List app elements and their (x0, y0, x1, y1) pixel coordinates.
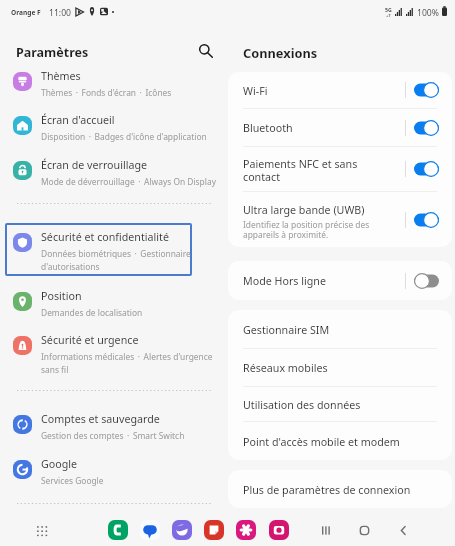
staticText: Position (41, 289, 82, 304)
staticText: 11:00 (49, 7, 71, 19)
button[interactable]: Sécurité et confidentialité (0, 221, 228, 282)
staticText: Mode de déverrouillage · Always On Displ… (41, 176, 216, 187)
staticText: Paramètres (16, 44, 89, 61)
button[interactable]: Réseaux mobiles (228, 349, 452, 386)
button[interactable]: Activé (414, 161, 439, 177)
staticText: Connexions (243, 44, 318, 61)
staticText: Demandes de localisation (41, 307, 143, 318)
button[interactable]: Messages (140, 520, 160, 540)
staticText: Gestionnaire SIM (243, 323, 330, 338)
staticText: Données biométriques · Gestionnaire d'au… (41, 248, 218, 273)
button[interactable]: Mode Hors ligne (228, 261, 452, 300)
button[interactable]: Écran de verrouillage (0, 149, 228, 196)
staticText: Services Google (41, 475, 104, 486)
staticText: Google (41, 457, 78, 472)
button[interactable]: Position (0, 280, 228, 327)
button[interactable]: Utilisation des données (228, 387, 452, 421)
staticText: Réseaux mobiles (243, 361, 328, 376)
button[interactable]: Bluetooth (228, 109, 452, 146)
button[interactable]: Téléphone (108, 520, 128, 540)
staticText: +T (386, 13, 391, 19)
staticText: Écran d'accueil (41, 113, 115, 128)
button[interactable]: Gestionnaire SIM (228, 310, 452, 348)
button[interactable]: Activé (414, 212, 439, 228)
button[interactable]: Accueil (353, 519, 375, 541)
button[interactable]: Internet (172, 520, 192, 540)
staticText: Disposition · Badges d'icône d'applicati… (41, 131, 207, 142)
button[interactable]: Plus de paramètres de connexion (228, 470, 452, 508)
button[interactable]: Écran d'accueil (0, 104, 228, 151)
staticText: Informations médicales · Alertes d'urgen… (41, 351, 218, 376)
staticText: Sécurité et confidentialité (41, 230, 169, 245)
button[interactable]: Désactivé (414, 273, 439, 289)
button[interactable]: Retour (392, 519, 414, 541)
button[interactable]: Applications récentes (314, 519, 336, 541)
staticText: Point d'accès mobile et modem (243, 435, 400, 450)
staticText: Orange F (11, 8, 41, 17)
button[interactable]: Comptes et sauvegarde (0, 403, 228, 450)
button[interactable]: Sécurité et urgence (0, 324, 228, 385)
button[interactable]: Wi-Fi (228, 72, 452, 108)
staticText: 100% (417, 7, 439, 19)
staticText: Utilisation des données (243, 398, 361, 413)
staticText: Comptes et sauvegarde (41, 412, 160, 427)
button[interactable]: Paiements NFC et sans contact (228, 147, 452, 191)
button[interactable]: Mes fichiers (204, 520, 224, 540)
staticText: 5G (385, 6, 392, 13)
button[interactable]: Appareil photo (269, 520, 289, 540)
staticText: Sécurité et urgence (41, 333, 139, 348)
button[interactable]: Point d'accès mobile et modem (228, 422, 452, 460)
button[interactable]: Galerie (236, 520, 256, 540)
staticText: Paiements NFC et sans contact (243, 157, 397, 184)
staticText: Thèmes (41, 69, 81, 84)
button[interactable]: Thèmes (0, 60, 228, 107)
button[interactable]: Google (0, 448, 228, 495)
button[interactable]: Activé (414, 120, 439, 136)
button[interactable]: Toutes les applications (30, 519, 52, 541)
button[interactable]: Activé (414, 82, 439, 98)
button[interactable]: Ultra large bande (UWB) (228, 192, 452, 247)
staticText: Wi-Fi (243, 84, 268, 99)
staticText: Gestion des comptes · Smart Switch (41, 430, 185, 441)
staticText: Thèmes · Fonds d'écran · Icônes (41, 87, 172, 98)
staticText: Identifiez la position précise des appar… (243, 219, 397, 241)
staticText: Plus de paramètres de connexion (243, 483, 411, 498)
staticText: Mode Hors ligne (243, 274, 326, 289)
button[interactable]: Rechercher (193, 38, 219, 64)
staticText: Écran de verrouillage (41, 158, 148, 173)
staticText: Ultra large bande (UWB) (243, 203, 365, 218)
staticText: Bluetooth (243, 121, 293, 136)
